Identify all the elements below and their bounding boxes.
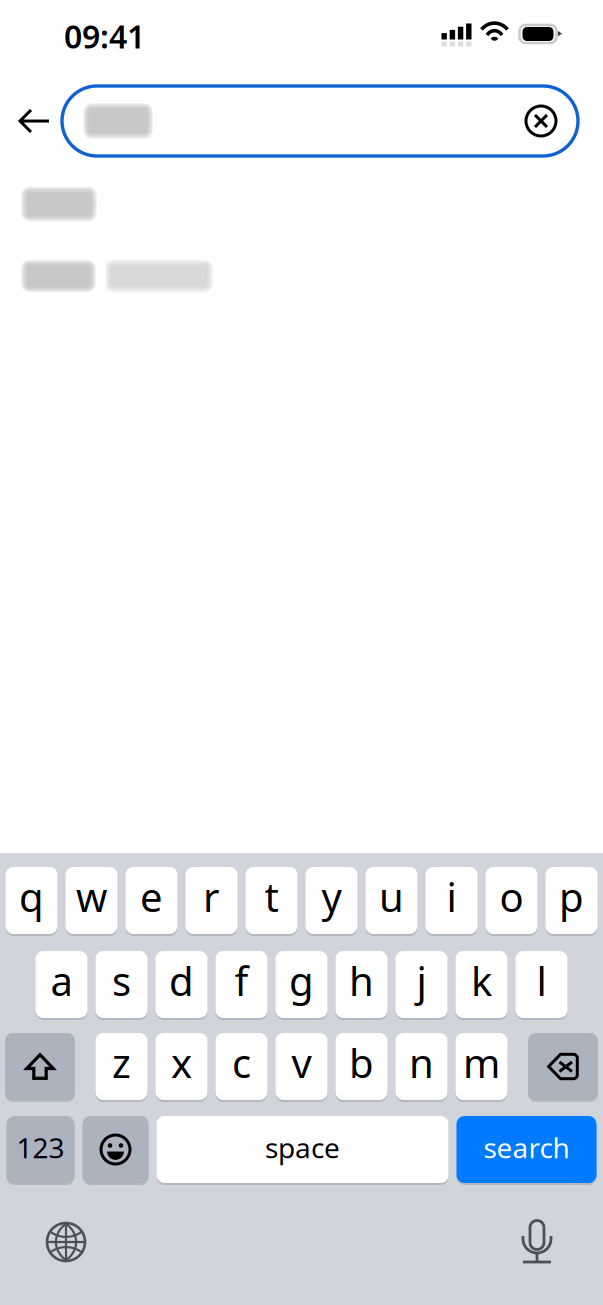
button[interactable]: m xyxy=(455,1032,507,1101)
button[interactable]: i xyxy=(425,866,477,935)
staticText: k xyxy=(471,954,492,1007)
button[interactable]: v xyxy=(275,1032,327,1101)
button[interactable]: Shift xyxy=(5,1032,75,1101)
staticText: search xyxy=(483,1129,569,1166)
button[interactable]: n xyxy=(395,1032,447,1101)
button[interactable]: u xyxy=(365,866,417,935)
staticText: w xyxy=(76,870,107,923)
button[interactable]: Back xyxy=(8,94,62,148)
staticText: space xyxy=(265,1129,340,1166)
staticText: p xyxy=(559,870,584,923)
staticText: f xyxy=(234,954,248,1007)
staticText: i xyxy=(446,870,456,923)
staticText: s xyxy=(112,954,131,1007)
button[interactable]: Emoji xyxy=(82,1115,148,1184)
button[interactable]: w xyxy=(65,866,117,935)
staticText: x xyxy=(171,1036,192,1089)
button[interactable]: c xyxy=(215,1032,267,1101)
button[interactable]: f xyxy=(215,950,267,1019)
button[interactable]: space xyxy=(156,1115,448,1184)
button[interactable]: Clear text xyxy=(525,105,557,137)
button[interactable] xyxy=(0,240,603,312)
button[interactable]: z xyxy=(95,1032,147,1101)
staticText: e xyxy=(140,870,163,923)
staticText: t xyxy=(264,870,278,923)
button[interactable]: g xyxy=(275,950,327,1019)
staticText: h xyxy=(349,954,374,1007)
staticText: 123 xyxy=(16,1129,64,1166)
staticText: v xyxy=(291,1036,311,1089)
button[interactable]: y xyxy=(305,866,357,935)
button[interactable]: r xyxy=(185,866,237,935)
button[interactable]: 123 xyxy=(6,1115,74,1184)
button[interactable]: a xyxy=(35,950,87,1019)
staticText: q xyxy=(19,870,44,923)
staticText: b xyxy=(349,1036,374,1089)
staticText: u xyxy=(379,870,404,923)
staticText: z xyxy=(112,1036,131,1089)
button[interactable]: j xyxy=(395,950,447,1019)
button[interactable]: s xyxy=(95,950,147,1019)
staticText: o xyxy=(499,870,523,923)
button[interactable]: t xyxy=(245,866,297,935)
button[interactable]: d xyxy=(155,950,207,1019)
button[interactable]: Change keyboard xyxy=(38,1214,94,1270)
button[interactable]: h xyxy=(335,950,387,1019)
button[interactable]: e xyxy=(125,866,177,935)
button[interactable]: search xyxy=(456,1115,596,1184)
button[interactable]: Dictate xyxy=(509,1214,565,1270)
button[interactable]: o xyxy=(485,866,537,935)
button[interactable]: Delete xyxy=(528,1032,598,1101)
staticText: 09:41 xyxy=(64,15,145,57)
button[interactable]: p xyxy=(545,866,597,935)
staticText: y xyxy=(321,870,341,923)
button[interactable]: b xyxy=(335,1032,387,1101)
button[interactable]: k xyxy=(455,950,507,1019)
staticText: d xyxy=(169,954,194,1007)
staticText: l xyxy=(536,954,546,1007)
button[interactable]: x xyxy=(155,1032,207,1101)
staticText: m xyxy=(463,1036,500,1089)
staticText: g xyxy=(289,954,314,1007)
button[interactable] xyxy=(0,168,603,240)
button[interactable]: q xyxy=(5,866,57,935)
staticText: n xyxy=(409,1036,434,1089)
staticText: a xyxy=(50,954,72,1007)
staticText: j xyxy=(416,954,426,1007)
staticText: r xyxy=(203,870,220,923)
staticText: c xyxy=(232,1036,251,1089)
button[interactable]: l xyxy=(515,950,567,1019)
